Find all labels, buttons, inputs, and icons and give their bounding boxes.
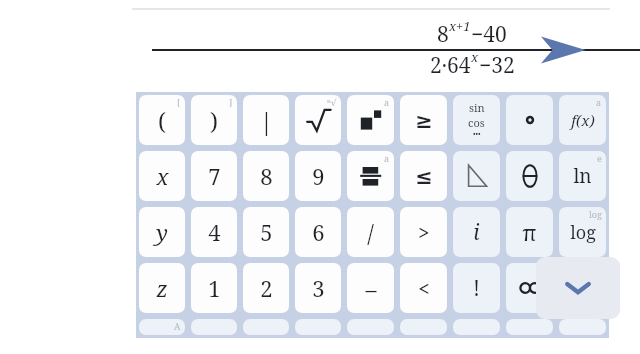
staticText: −32: [479, 51, 515, 80]
button[interactable]: ≥: [400, 95, 447, 145]
staticText: –: [365, 273, 377, 303]
button[interactable]: [453, 319, 500, 335]
button[interactable]: |: [243, 95, 289, 145]
button[interactable]: 4: [191, 207, 237, 257]
button[interactable]: x: [139, 151, 185, 201]
button[interactable]: 5: [243, 207, 289, 257]
staticText: 7: [208, 161, 221, 191]
staticText: x+1: [449, 17, 471, 35]
button[interactable]: 2: [243, 263, 289, 313]
staticText: a: [384, 96, 390, 108]
staticText: ]: [229, 96, 233, 108]
staticText: 3: [312, 273, 325, 303]
button[interactable]: π: [506, 207, 553, 257]
button[interactable]: [: [139, 95, 185, 145]
button[interactable]: [295, 319, 341, 335]
button[interactable]: [191, 319, 237, 335]
staticText: ≥: [415, 108, 433, 133]
staticText: 2: [260, 273, 273, 303]
staticText: /: [367, 217, 374, 248]
button[interactable]: sin: [453, 95, 500, 145]
button[interactable]: [506, 319, 553, 335]
staticText: ≤: [415, 164, 433, 189]
button[interactable]: ]: [191, 95, 237, 145]
button[interactable]: [243, 319, 289, 335]
button[interactable]: 7: [191, 151, 237, 201]
staticText: −40: [471, 20, 507, 49]
staticText: A: [174, 320, 181, 332]
staticText: i: [473, 218, 480, 247]
staticText: <: [418, 275, 430, 302]
button[interactable]: 9: [295, 151, 341, 201]
button[interactable]: a: [559, 95, 606, 145]
button[interactable]: log: [559, 207, 606, 257]
staticText: >: [418, 219, 430, 246]
button[interactable]: a: [347, 95, 394, 145]
staticText: e: [597, 152, 602, 164]
button[interactable]: ≤: [400, 151, 447, 201]
button[interactable]: [506, 263, 553, 313]
staticText: 8: [437, 20, 449, 49]
staticText: ⁿ√: [327, 96, 337, 108]
staticText: 8: [260, 161, 273, 191]
staticText: 1: [208, 273, 221, 303]
button[interactable]: –: [347, 263, 394, 313]
button[interactable]: [506, 95, 553, 145]
staticText: log: [589, 208, 602, 220]
staticText: log: [570, 220, 596, 245]
button[interactable]: A: [139, 319, 185, 335]
staticText: π: [522, 217, 537, 247]
button[interactable]: i: [453, 207, 500, 257]
staticText: x: [156, 161, 169, 191]
staticText: z: [156, 273, 168, 303]
button[interactable]: a: [347, 151, 394, 201]
staticText: a: [384, 152, 390, 164]
button[interactable]: Send: [534, 26, 592, 74]
button[interactable]: Collapse keyboard: [536, 257, 620, 319]
button[interactable]: [506, 151, 553, 201]
button[interactable]: [347, 319, 394, 335]
staticText: !: [473, 274, 480, 303]
button[interactable]: 8: [243, 151, 289, 201]
staticText: y: [156, 217, 168, 247]
staticText: ln: [573, 163, 592, 189]
button[interactable]: z: [139, 263, 185, 313]
staticText: 5: [260, 217, 273, 247]
button[interactable]: [559, 319, 606, 335]
button[interactable]: /: [347, 207, 394, 257]
staticText: •••: [473, 130, 481, 140]
button[interactable]: [559, 263, 606, 313]
staticText: 6: [312, 217, 325, 247]
button[interactable]: 1: [191, 263, 237, 313]
staticText: f(x): [571, 110, 595, 130]
button[interactable]: <: [400, 263, 447, 313]
staticText: 9: [312, 161, 325, 191]
button[interactable]: [453, 151, 500, 201]
staticText: [: [177, 96, 181, 108]
button[interactable]: >: [400, 207, 447, 257]
staticText: ): [210, 105, 218, 136]
button[interactable]: 6: [295, 207, 341, 257]
staticText: cos: [468, 115, 485, 130]
staticText: sin: [469, 100, 485, 115]
staticText: a: [596, 96, 602, 108]
button[interactable]: !: [453, 263, 500, 313]
staticText: (: [158, 105, 166, 136]
staticText: |: [260, 105, 273, 136]
button[interactable]: ⁿ√: [295, 95, 341, 145]
button[interactable]: [400, 319, 447, 335]
button[interactable]: e: [559, 151, 606, 201]
staticText: x: [471, 48, 479, 66]
button[interactable]: 3: [295, 263, 341, 313]
button[interactable]: y: [139, 207, 185, 257]
staticText: 4: [208, 217, 221, 247]
staticText: 2·64: [430, 51, 471, 80]
